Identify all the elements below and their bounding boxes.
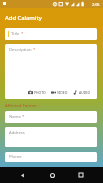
- button[interactable]: Phone: [5, 152, 97, 162]
- button[interactable]: Address: [5, 127, 97, 147]
- staticText: Description: [9, 47, 32, 53]
- staticText: *: [21, 31, 24, 37]
- staticText: Add Calamity: [5, 14, 42, 22]
- staticText: Address: [9, 130, 25, 136]
- button[interactable]: Name: [5, 111, 97, 123]
- button[interactable]: PHOTO: [28, 90, 46, 95]
- staticText: AUDIO: [79, 90, 91, 95]
- staticText: *: [22, 114, 25, 120]
- staticText: Phone: [9, 154, 22, 160]
- button[interactable]: VIDEO: [51, 90, 68, 95]
- staticText: PHOTO: [34, 90, 46, 95]
- button[interactable]: Description: [5, 44, 97, 99]
- staticText: Title: [11, 31, 20, 37]
- button[interactable]: Home: [45, 168, 59, 182]
- button[interactable]: Back: [15, 168, 29, 182]
- staticText: Name: [9, 114, 21, 120]
- staticText: VIDEO: [57, 90, 68, 95]
- button[interactable]: Recents: [74, 168, 88, 182]
- button[interactable]: AUDIO: [73, 90, 91, 95]
- staticText: *: [33, 47, 36, 53]
- button[interactable]: Title: [5, 28, 97, 40]
- staticText: 2:06: [92, 2, 100, 7]
- staticText: Affected Farmer :: [5, 103, 39, 109]
